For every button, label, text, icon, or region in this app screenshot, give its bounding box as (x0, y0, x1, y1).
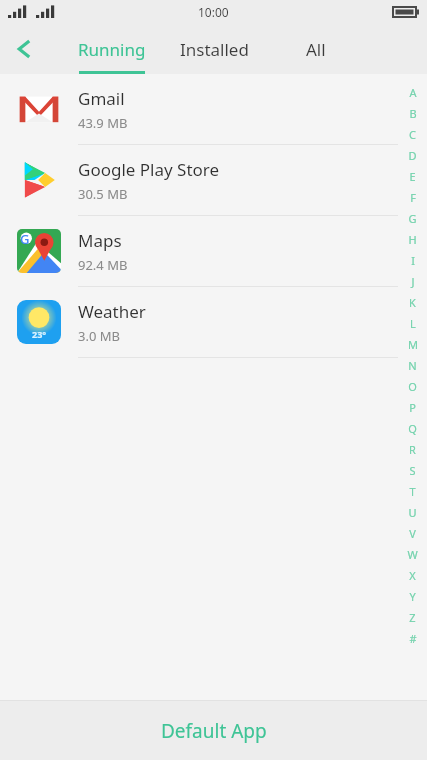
button[interactable]: V (398, 523, 427, 544)
staticText: B (409, 106, 417, 121)
staticText: O (408, 379, 417, 394)
button[interactable]: 23° (0, 287, 427, 358)
button[interactable]: S (398, 460, 427, 481)
button[interactable]: A (398, 82, 427, 103)
staticText: G (20, 230, 30, 248)
button[interactable]: Installed (163, 24, 265, 74)
staticText: L (410, 316, 416, 331)
staticText: T (409, 484, 416, 499)
staticText: Q (408, 421, 417, 436)
staticText: U (408, 505, 417, 520)
button[interactable]: L (398, 313, 427, 334)
button[interactable]: Gmail (0, 74, 427, 145)
button[interactable]: D (398, 145, 427, 166)
staticText: I (411, 253, 415, 268)
button[interactable]: B (398, 103, 427, 124)
button[interactable]: Q (398, 418, 427, 439)
staticText: C (409, 127, 416, 142)
staticText: 43.9 MB (78, 114, 128, 132)
staticText: 3.0 MB (78, 327, 120, 345)
staticText: All (306, 38, 326, 61)
button[interactable]: C (398, 124, 427, 145)
staticText: Gmail (78, 87, 125, 110)
button[interactable]: All (265, 24, 367, 74)
staticText: V (409, 526, 416, 541)
staticText: D (408, 148, 417, 163)
button[interactable]: P (398, 397, 427, 418)
staticText: Google Play Store (78, 158, 220, 181)
button[interactable]: R (398, 439, 427, 460)
button[interactable]: W (398, 544, 427, 565)
staticText: Default App (161, 718, 267, 744)
staticText: Installed (180, 38, 249, 61)
button[interactable]: G (0, 216, 427, 287)
staticText: P (409, 400, 416, 415)
button[interactable]: U (398, 502, 427, 523)
button[interactable]: I (398, 250, 427, 271)
staticText: 10:00 (198, 4, 229, 20)
button[interactable]: Z (398, 607, 427, 628)
staticText: S (409, 463, 416, 478)
staticText: Maps (78, 229, 122, 252)
button[interactable]: J (398, 271, 427, 292)
staticText: W (407, 547, 418, 562)
button[interactable]: X (398, 565, 427, 586)
staticText: Y (409, 589, 416, 604)
staticText: Weather (78, 300, 146, 323)
staticText: 92.4 MB (78, 256, 128, 274)
button[interactable]: O (398, 376, 427, 397)
button[interactable]: Google Play Store (0, 145, 427, 216)
button[interactable]: Y (398, 586, 427, 607)
staticText: J (411, 274, 415, 289)
staticText: R (409, 442, 416, 457)
button[interactable]: T (398, 481, 427, 502)
button[interactable]: M (398, 334, 427, 355)
staticText: N (408, 358, 417, 373)
button[interactable]: Default App (0, 701, 427, 760)
staticText: K (409, 295, 416, 310)
staticText: E (409, 169, 416, 184)
staticText: Z (409, 610, 416, 625)
button[interactable]: H (398, 229, 427, 250)
staticText: G (408, 211, 417, 226)
button[interactable]: F (398, 187, 427, 208)
staticText: X (409, 568, 416, 583)
button[interactable]: K (398, 292, 427, 313)
button[interactable]: Back (0, 24, 48, 74)
button[interactable]: G (398, 208, 427, 229)
staticText: F (410, 190, 416, 205)
staticText: M (408, 337, 418, 352)
button[interactable]: Running (60, 24, 163, 74)
staticText: # (409, 631, 417, 646)
staticText: Running (78, 38, 146, 61)
staticText: 23° (32, 328, 47, 340)
staticText: H (408, 232, 417, 247)
button[interactable]: E (398, 166, 427, 187)
button[interactable]: # (398, 628, 427, 649)
button[interactable]: N (398, 355, 427, 376)
staticText: 30.5 MB (78, 185, 128, 203)
staticText: A (409, 85, 417, 100)
